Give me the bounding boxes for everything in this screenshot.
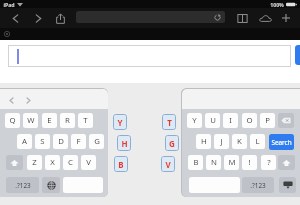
staticText: Z bbox=[32, 157, 37, 168]
button[interactable]: Close tab bbox=[3, 30, 11, 38]
button[interactable]: C bbox=[63, 155, 78, 170]
button[interactable]: Y bbox=[187, 113, 202, 128]
button[interactable]: Next field bbox=[22, 94, 35, 107]
button[interactable]: G bbox=[89, 134, 104, 149]
button[interactable]: Next keyboard bbox=[42, 177, 60, 193]
staticText: .?123 bbox=[250, 181, 266, 190]
staticText: T bbox=[83, 115, 88, 126]
button[interactable]: J bbox=[214, 134, 229, 149]
staticText: X bbox=[50, 157, 55, 168]
button[interactable]: U bbox=[205, 113, 220, 128]
button[interactable]: Z bbox=[27, 155, 42, 170]
staticText: .?123 bbox=[15, 181, 31, 190]
staticText: O bbox=[246, 115, 253, 126]
button[interactable]: T bbox=[78, 113, 93, 128]
staticText: Y bbox=[192, 115, 197, 126]
button[interactable]: B bbox=[114, 156, 128, 172]
staticText: C bbox=[68, 157, 73, 168]
button[interactable]: H bbox=[196, 134, 211, 149]
button[interactable]: Q bbox=[5, 113, 20, 128]
staticText: V bbox=[165, 159, 171, 170]
button[interactable]: R bbox=[60, 113, 75, 128]
button[interactable]: O bbox=[242, 113, 257, 128]
staticText: K bbox=[237, 136, 242, 147]
staticText: T bbox=[167, 117, 172, 128]
button[interactable]: B bbox=[188, 155, 203, 170]
staticText: F bbox=[76, 136, 81, 147]
staticText: ? bbox=[267, 157, 271, 168]
staticText: H bbox=[121, 138, 128, 149]
staticText: B bbox=[118, 159, 124, 170]
staticText: iPad bbox=[3, 1, 15, 8]
staticText: E bbox=[47, 115, 52, 126]
staticText: N bbox=[211, 157, 217, 168]
staticText: D bbox=[58, 136, 64, 147]
staticText: B bbox=[193, 157, 199, 168]
button[interactable]: H bbox=[117, 135, 131, 151]
button[interactable]: ! bbox=[242, 155, 257, 170]
button[interactable]: F bbox=[71, 134, 86, 149]
staticText: G bbox=[94, 136, 100, 147]
staticText: V bbox=[86, 157, 91, 168]
staticText: Y bbox=[117, 117, 123, 128]
button[interactable]: Shift bbox=[278, 155, 295, 170]
button[interactable]: M bbox=[224, 155, 239, 170]
button[interactable]: Address field bbox=[76, 11, 225, 23]
button[interactable]: X bbox=[45, 155, 60, 170]
button[interactable]: T bbox=[162, 114, 176, 130]
button[interactable]: New Tab bbox=[278, 10, 294, 26]
staticText: G bbox=[169, 138, 175, 149]
staticText: P bbox=[265, 115, 270, 126]
button[interactable]: I bbox=[223, 113, 238, 128]
button[interactable]: V bbox=[161, 156, 175, 172]
staticText: Search bbox=[271, 138, 292, 147]
staticText: M bbox=[228, 157, 236, 168]
staticText: R bbox=[65, 115, 70, 126]
button[interactable]: Bookmarks bbox=[234, 10, 250, 26]
button[interactable]: Hide keyboard bbox=[279, 177, 296, 193]
button[interactable]: ? bbox=[261, 155, 276, 170]
staticText: A bbox=[22, 136, 27, 147]
button[interactable]: Search input bbox=[8, 45, 291, 67]
button[interactable]: .?123 bbox=[242, 177, 274, 193]
button[interactable]: G bbox=[165, 135, 179, 151]
staticText: W bbox=[27, 115, 35, 126]
button[interactable]: V bbox=[81, 155, 96, 170]
button[interactable]: iCloud Tabs bbox=[257, 10, 273, 26]
button[interactable]: P bbox=[260, 113, 275, 128]
button[interactable]: Share bbox=[52, 10, 68, 26]
staticText: S bbox=[40, 136, 45, 147]
button[interactable]: Back bbox=[7, 10, 23, 26]
button[interactable]: E bbox=[42, 113, 57, 128]
staticText: 100% bbox=[270, 1, 284, 8]
staticText: ! bbox=[248, 157, 251, 168]
button[interactable]: L bbox=[250, 134, 265, 149]
button[interactable]: .?123 bbox=[6, 177, 39, 193]
button[interactable]: Search bbox=[269, 134, 294, 150]
button[interactable]: K bbox=[232, 134, 247, 149]
staticText: Q bbox=[9, 115, 16, 126]
button[interactable] bbox=[63, 177, 103, 193]
button[interactable]: Go bbox=[295, 45, 300, 65]
button[interactable]: A bbox=[17, 134, 32, 149]
button[interactable]: W bbox=[23, 113, 38, 128]
staticText: I bbox=[229, 115, 232, 126]
button[interactable]: N bbox=[206, 155, 221, 170]
button[interactable]: D bbox=[53, 134, 68, 149]
button[interactable]: Forward bbox=[30, 10, 46, 26]
button[interactable]: S bbox=[35, 134, 50, 149]
staticText: U bbox=[210, 115, 216, 126]
button[interactable]: Backspace bbox=[278, 113, 294, 128]
staticText: L bbox=[255, 136, 260, 147]
button[interactable]: Previous field bbox=[5, 94, 18, 107]
staticText: H bbox=[201, 136, 207, 147]
button[interactable]: Y bbox=[113, 114, 127, 130]
staticText: J bbox=[220, 136, 223, 147]
button[interactable]: Shift bbox=[6, 155, 23, 170]
